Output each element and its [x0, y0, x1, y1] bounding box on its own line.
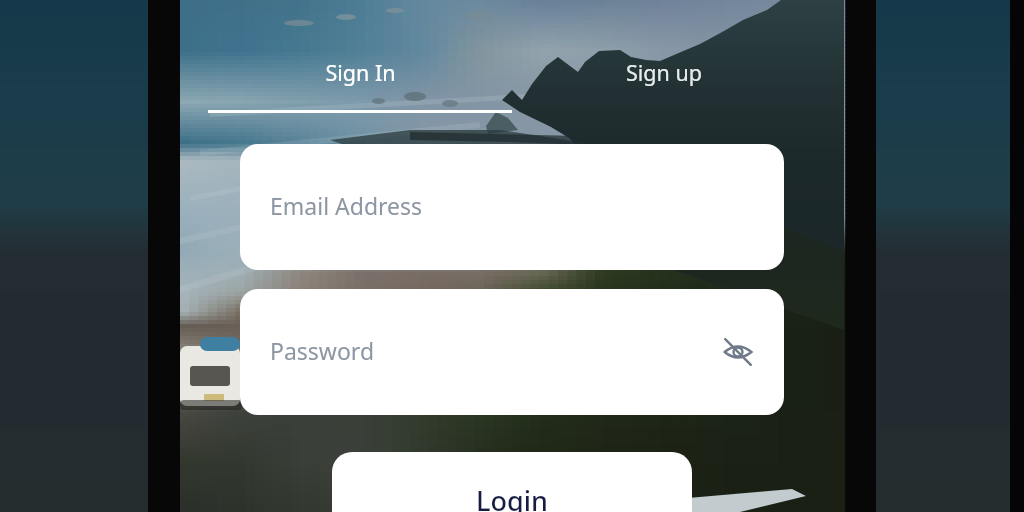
button[interactable]: Email Address: [240, 144, 784, 270]
staticText: Sign In: [325, 58, 396, 87]
staticText: Email Address: [270, 190, 423, 221]
button[interactable]: Show password: [716, 330, 760, 374]
staticText: Password: [270, 335, 375, 366]
button[interactable]: Sign up: [512, 58, 816, 110]
staticText: Login: [476, 482, 548, 512]
staticText: Sign up: [626, 58, 702, 87]
button[interactable]: Login: [332, 452, 692, 512]
button[interactable]: Sign In: [208, 58, 512, 113]
button[interactable]: Password: [240, 289, 784, 415]
